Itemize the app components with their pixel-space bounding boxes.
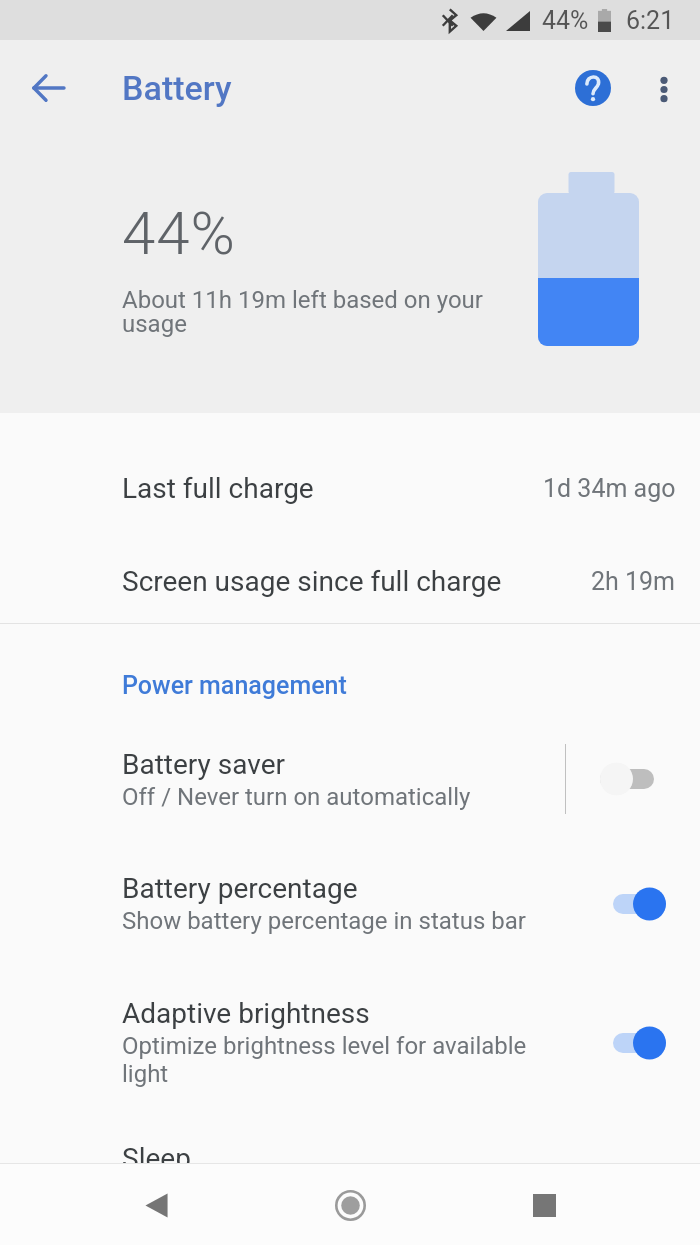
button[interactable]: On xyxy=(600,1020,666,1066)
button[interactable]: Adaptive brightness xyxy=(0,997,700,1088)
staticText: Battery xyxy=(122,68,232,108)
button[interactable]: More options xyxy=(634,59,694,119)
staticText: 6:21 xyxy=(626,6,675,35)
button[interactable]: Back xyxy=(116,1165,196,1245)
staticText: 44% xyxy=(542,6,589,35)
button[interactable]: Battery percentage xyxy=(0,872,700,935)
staticText: Power management xyxy=(122,671,347,700)
staticText: Show battery percentage in status bar xyxy=(122,907,526,935)
button[interactable]: Off xyxy=(600,756,666,802)
staticText: 2h 19m xyxy=(591,567,676,596)
button[interactable]: Last full charge xyxy=(0,442,700,535)
staticText: Off / Never turn on automatically xyxy=(122,783,471,811)
staticText: Adaptive brightness xyxy=(122,997,370,1030)
staticText: 1d 34m ago xyxy=(543,474,676,503)
staticText: Battery percentage xyxy=(122,872,358,905)
staticText: Optimize brightness level for available … xyxy=(122,1032,539,1088)
staticText: Battery saver xyxy=(122,748,285,781)
button[interactable]: Help xyxy=(563,58,623,118)
button[interactable]: Recent apps xyxy=(504,1165,584,1245)
button[interactable]: Battery saver xyxy=(0,744,700,814)
staticText: About 11h 19m left based on your usage xyxy=(122,286,510,338)
staticText: 44% xyxy=(122,198,236,268)
button[interactable]: Navigate up xyxy=(14,54,82,122)
staticText: Screen usage since full charge xyxy=(122,565,502,598)
staticText: Sleep xyxy=(122,1142,191,1175)
staticText: Last full charge xyxy=(122,472,314,505)
button[interactable]: Home xyxy=(310,1165,390,1245)
button[interactable]: Screen usage since full charge xyxy=(0,535,700,623)
button[interactable]: On xyxy=(600,881,666,927)
